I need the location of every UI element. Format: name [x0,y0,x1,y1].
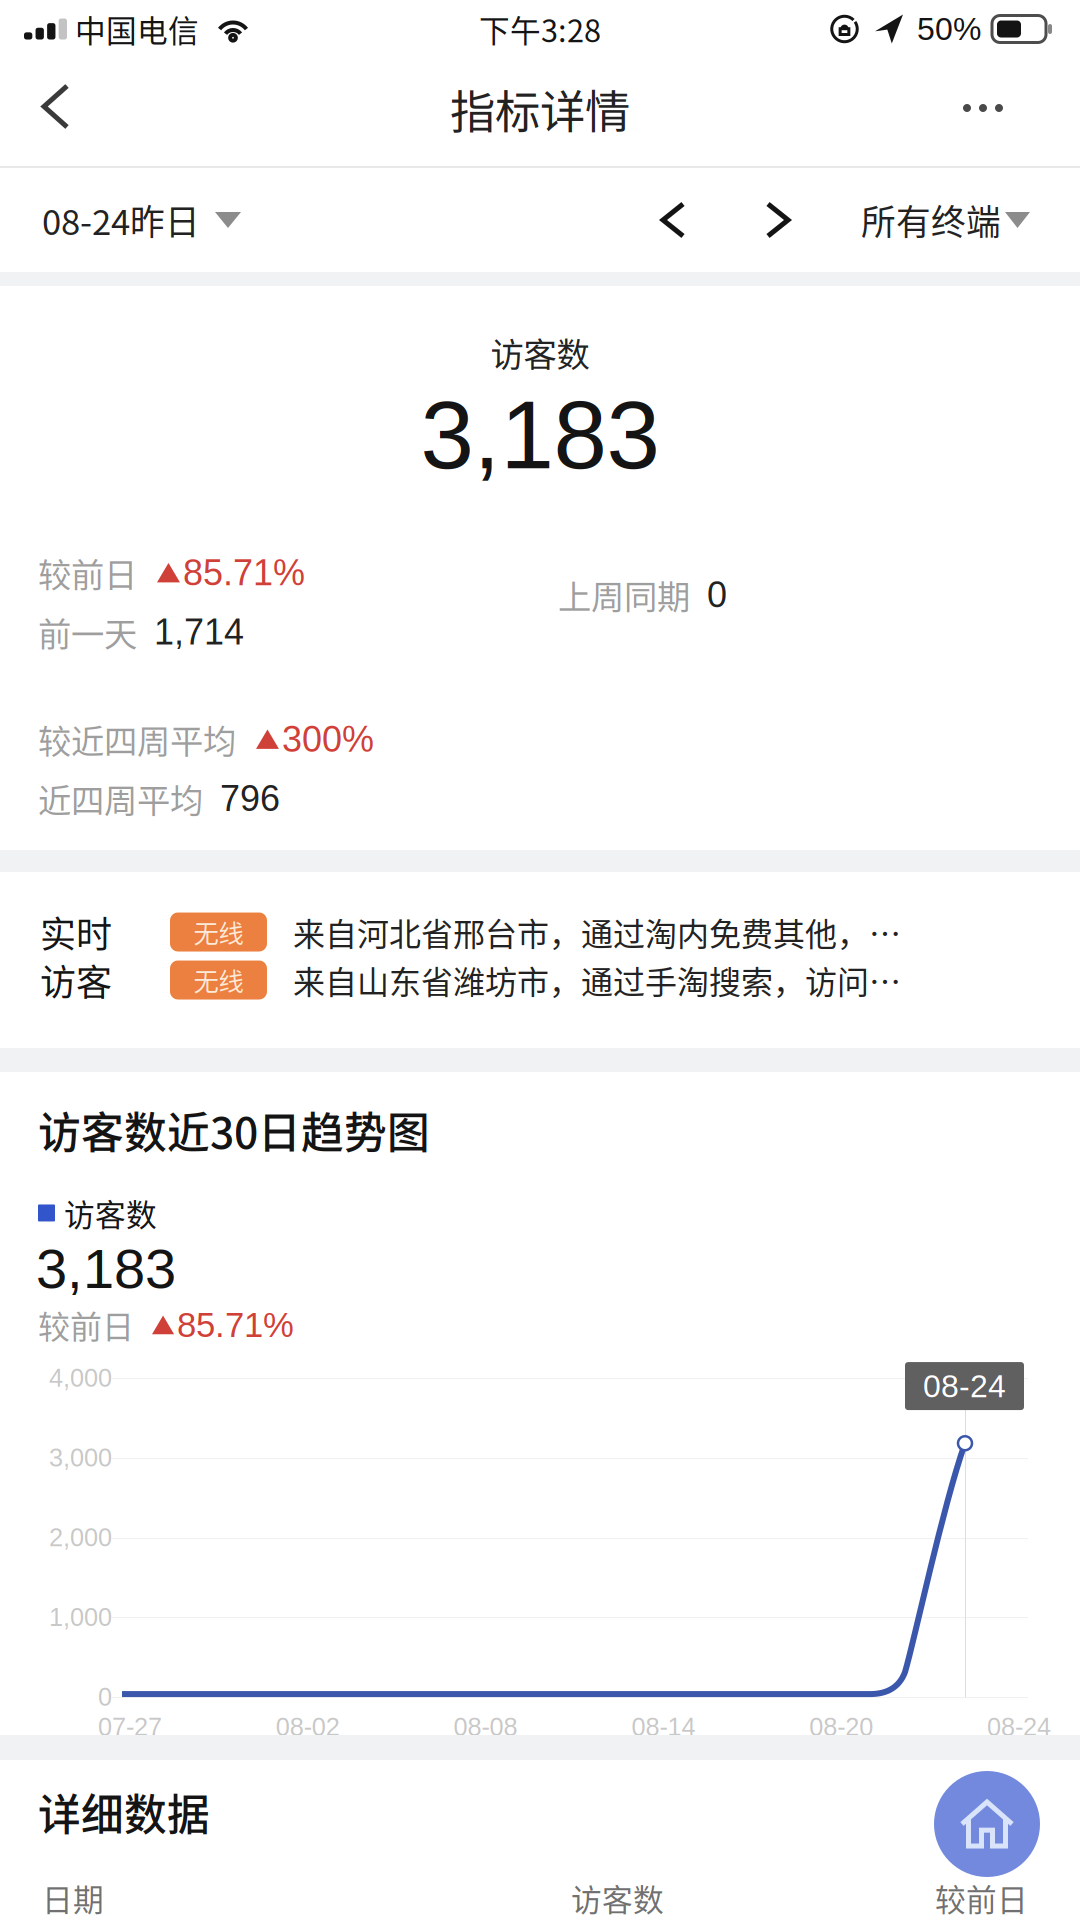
staticText: 300% [282,719,374,759]
staticText: 2,000 [49,1523,112,1552]
button[interactable]: 更多 [923,58,1080,166]
staticText: 85.71% [177,1306,294,1344]
button[interactable]: 下一天 [713,168,823,272]
staticText: 访客 [40,954,112,1006]
staticText: 指标详情 [450,76,630,142]
staticText: 中国电信 [75,7,199,51]
staticText: 较前日 [935,1876,1028,1920]
staticText: 3,183 [36,1237,176,1300]
staticText: 07-27 [98,1713,162,1741]
staticText: 08-20 [809,1713,873,1741]
staticText: 3,183 [420,381,659,488]
button[interactable]: 08-24昨日 [0,161,263,279]
staticText: 08-24 [987,1713,1051,1741]
staticText: 来自山东省潍坊市，通过手淘搜索，访问… [293,957,901,1003]
staticText: 08-24昨日 [42,195,200,245]
staticText: 所有终端 [861,195,1001,245]
staticText: 访客数 [490,328,589,376]
staticText: 无线 [193,962,243,998]
staticText: 4,000 [49,1364,112,1392]
staticText: 08-24 [923,1368,1006,1404]
staticText: 来自河北省邢台市，通过淘内免费其他，… [293,909,901,955]
staticText: 08-02 [276,1713,340,1741]
staticText: 0 [98,1683,112,1711]
staticText: 1,714 [154,612,244,652]
staticText: 近四周平均 [38,774,203,823]
staticText: 上周同期 [558,570,690,619]
staticText: 下午3:28 [479,7,601,51]
staticText: 796 [220,778,280,818]
staticText: 85.71% [183,552,305,593]
button[interactable]: 返回 [0,58,111,166]
button[interactable]: 上一天 [633,168,713,272]
staticText: 0 [707,574,727,615]
staticText: 较前日 [38,1302,134,1348]
staticText: 08-14 [631,1713,695,1741]
staticText: 较近四周平均 [38,715,236,763]
staticText: 访客数 [64,1191,157,1235]
staticText: 详细数据 [38,1781,210,1843]
button[interactable]: 所有终端 [839,161,1080,279]
staticText: 前一天 [38,608,137,656]
button[interactable]: 首页 [934,1771,1040,1877]
staticText: 无线 [193,914,243,950]
staticText: 访客数 [571,1876,664,1920]
staticText: 08-08 [454,1713,518,1741]
staticText: 实时 [40,906,112,958]
staticText: 访客数近30日趋势图 [38,1099,430,1161]
staticText: 50% [917,11,981,47]
staticText: 日期 [42,1876,104,1920]
staticText: 1,000 [49,1603,112,1631]
staticText: 较前日 [38,548,137,597]
staticText: 3,000 [49,1444,112,1472]
